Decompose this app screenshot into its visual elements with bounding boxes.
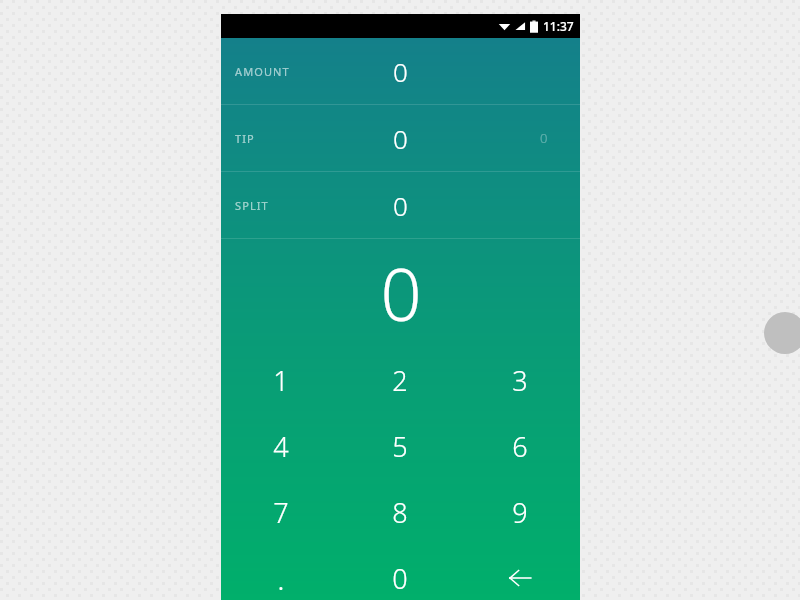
button[interactable]: Backspace [460, 545, 580, 600]
staticText: 0 [380, 244, 422, 342]
button[interactable]: 1 [221, 347, 340, 413]
button[interactable]: 7 [221, 479, 340, 545]
staticText: 5 [392, 428, 408, 465]
staticText: 1 [273, 362, 289, 399]
button[interactable]: 0 [221, 239, 580, 347]
button[interactable]: 3 [460, 347, 580, 413]
staticText: 8 [392, 494, 408, 531]
staticText: 2 [392, 362, 408, 399]
staticText: 0 [393, 188, 408, 223]
staticText: 9 [512, 494, 528, 531]
button[interactable]: AMOUNT [221, 38, 580, 104]
staticText: 0 [540, 129, 548, 147]
staticText: 7 [273, 494, 289, 531]
staticText: 4 [273, 428, 289, 465]
staticText: . [277, 558, 285, 599]
button[interactable]: 8 [340, 479, 460, 545]
button[interactable]: . [221, 545, 340, 600]
staticText: 3 [512, 362, 528, 399]
staticText: AMOUNT [235, 64, 290, 79]
button[interactable]: 0 [340, 545, 460, 600]
staticText: 0 [392, 560, 408, 597]
staticText: TIP [235, 131, 255, 146]
staticText: 6 [512, 428, 528, 465]
button[interactable]: SPLIT [221, 172, 580, 238]
button[interactable]: 2 [340, 347, 460, 413]
button[interactable]: 6 [460, 413, 580, 479]
button[interactable]: 4 [221, 413, 340, 479]
button[interactable]: TIP [221, 105, 580, 171]
button[interactable]: 9 [460, 479, 580, 545]
staticText: SPLIT [235, 198, 269, 213]
button[interactable]: 5 [340, 413, 460, 479]
staticText: 0 [393, 121, 408, 156]
staticText: 0 [393, 54, 408, 89]
staticText: 11:37 [543, 18, 574, 34]
